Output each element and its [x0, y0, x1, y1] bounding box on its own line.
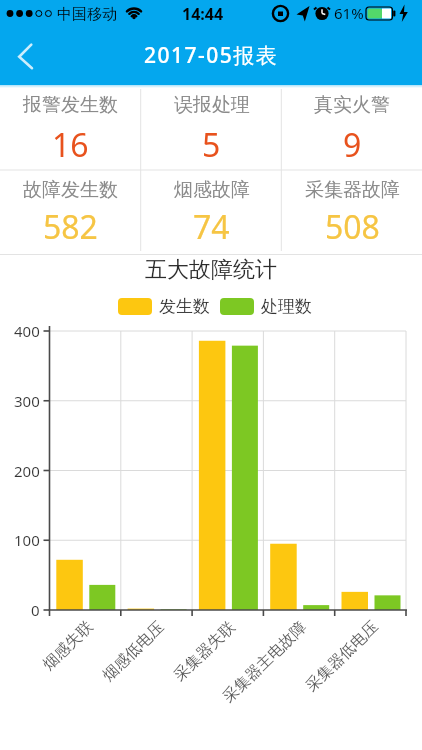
staticText: 报警发生数: [23, 93, 118, 117]
button[interactable]: 误报处理: [141, 85, 282, 170]
button[interactable]: 采集器故障: [282, 170, 422, 255]
staticText: 五大故障统计: [145, 256, 277, 284]
staticText: 采集器故障: [305, 178, 400, 202]
button[interactable]: 报警发生数: [0, 85, 141, 170]
button[interactable]: 故障发生数: [0, 170, 141, 255]
staticText: 508: [325, 205, 380, 249]
staticText: 中国移动: [57, 5, 117, 24]
staticText: 烟感故障: [174, 178, 250, 202]
staticText: 2017-05报表: [144, 41, 279, 70]
staticText: 处理数: [261, 296, 312, 317]
staticText: 故障发生数: [23, 178, 118, 202]
button[interactable]: [0, 34, 44, 78]
staticText: 发生数: [159, 296, 210, 317]
button[interactable]: 烟感故障: [141, 170, 282, 255]
button[interactable]: [118, 298, 152, 315]
button[interactable]: [220, 298, 254, 315]
button[interactable]: 真实火警: [282, 85, 422, 170]
staticText: 真实火警: [314, 93, 390, 117]
staticText: 14:44: [182, 3, 224, 25]
staticText: 74: [193, 205, 230, 249]
staticText: 5: [202, 123, 221, 167]
staticText: 9: [343, 123, 362, 167]
staticText: 61%: [334, 3, 364, 23]
staticText: 582: [43, 205, 98, 249]
staticText: 16: [52, 123, 89, 167]
staticText: 误报处理: [174, 93, 250, 117]
